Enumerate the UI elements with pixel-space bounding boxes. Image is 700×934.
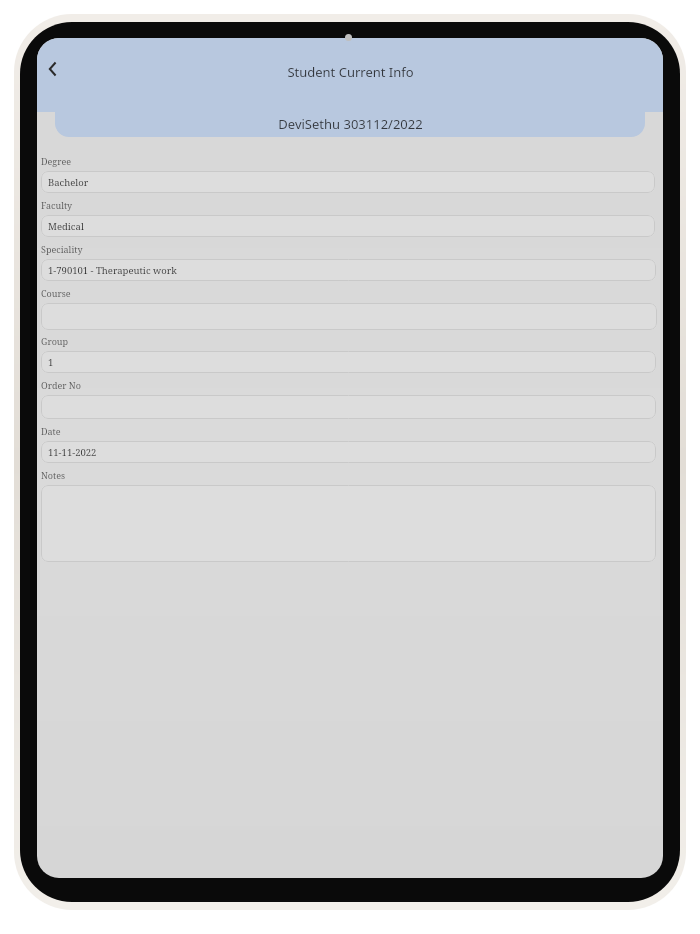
staticText: Student Current Info bbox=[287, 63, 414, 81]
button[interactable] bbox=[41, 395, 656, 419]
staticText: Faculty bbox=[41, 199, 73, 211]
button[interactable]: 1 bbox=[41, 351, 656, 373]
staticText: DeviSethu 303112/2022 bbox=[278, 115, 423, 133]
button[interactable]: Bachelor bbox=[41, 171, 655, 193]
button[interactable]: 11-11-2022 bbox=[41, 441, 656, 463]
staticText: Course bbox=[41, 287, 71, 299]
staticText: Date bbox=[41, 425, 61, 437]
button[interactable]: Medical bbox=[41, 215, 655, 237]
staticText: Speciality bbox=[41, 243, 83, 255]
button[interactable] bbox=[41, 485, 656, 562]
staticText: Order No bbox=[41, 379, 81, 391]
staticText: Group bbox=[41, 335, 69, 347]
staticText: Notes bbox=[41, 469, 66, 481]
staticText: 1-790101 - Therapeutic work bbox=[48, 264, 177, 277]
button[interactable]: Back bbox=[38, 54, 68, 84]
staticText: Bachelor bbox=[48, 176, 89, 189]
staticText: 11-11-2022 bbox=[48, 446, 97, 459]
staticText: 1 bbox=[48, 356, 54, 369]
button[interactable]: 1-790101 - Therapeutic work bbox=[41, 259, 656, 281]
staticText: Medical bbox=[48, 220, 84, 233]
staticText: Degree bbox=[41, 155, 72, 167]
button[interactable] bbox=[41, 303, 657, 330]
